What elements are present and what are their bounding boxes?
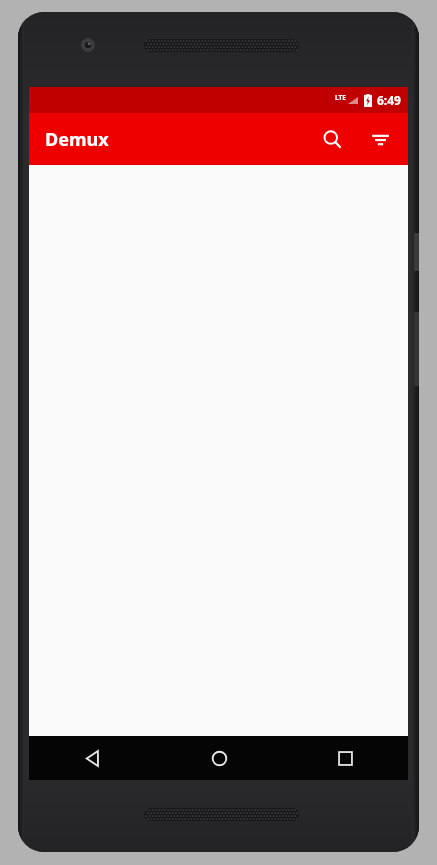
staticText: Demux xyxy=(45,127,109,152)
button[interactable]: Recent apps xyxy=(282,736,408,780)
staticText: LTE xyxy=(335,93,346,102)
button[interactable]: Back xyxy=(29,736,156,780)
button[interactable]: Filter xyxy=(358,117,402,161)
button[interactable]: Home xyxy=(156,736,282,780)
staticText: 6:49 xyxy=(377,92,401,108)
button[interactable]: Search xyxy=(310,117,354,161)
